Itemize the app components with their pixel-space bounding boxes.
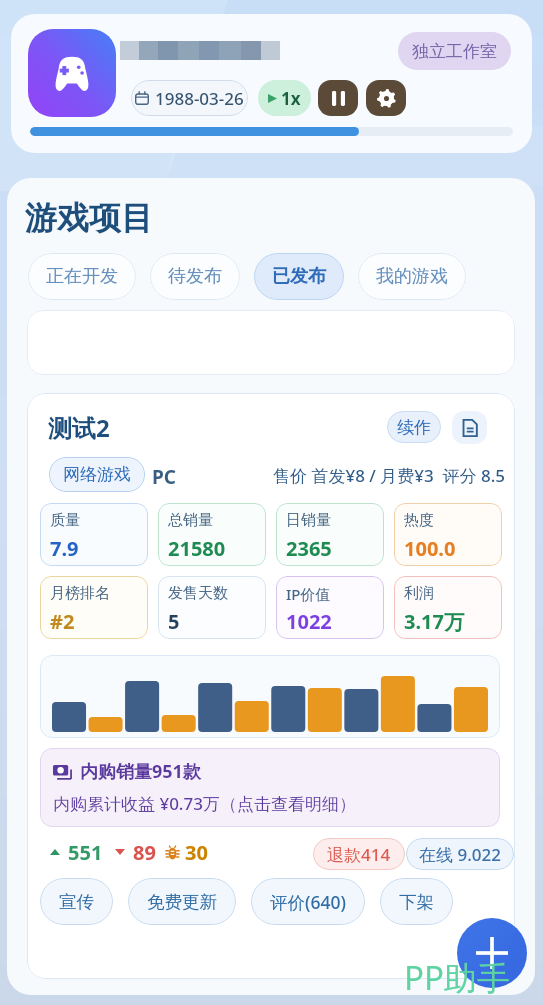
staticText: 续作 xyxy=(397,417,431,438)
staticText: 售价 首发¥8 / 月费¥3 评分 8.5 xyxy=(273,464,506,487)
staticText: 1022 xyxy=(286,608,332,635)
staticText: 100.0 xyxy=(404,535,456,562)
staticText: 21580 xyxy=(168,535,226,562)
staticText: 免费更新 xyxy=(147,891,217,913)
staticText: 内购销量951款 xyxy=(80,759,201,784)
button[interactable]: Add game xyxy=(457,918,527,988)
button[interactable]: 在线 9.022 xyxy=(406,838,514,870)
button[interactable]: 免费更新 xyxy=(128,878,236,925)
staticText: 宣传 xyxy=(59,891,94,913)
button[interactable]: 宣传 xyxy=(40,878,113,925)
staticText: 内购累计收益 ¥0.73万（点击查看明细） xyxy=(53,792,356,815)
button[interactable]: 独立工作室 xyxy=(398,32,511,70)
staticText: 30 xyxy=(185,839,208,866)
staticText: 日销量 xyxy=(286,511,331,530)
staticText: 2365 xyxy=(286,535,332,562)
button[interactable]: 正在开发 xyxy=(28,253,136,300)
staticText: 551 xyxy=(68,839,103,866)
button[interactable]: 待发布 xyxy=(150,253,240,300)
staticText: 1x xyxy=(281,87,301,110)
button[interactable]: 我的游戏 xyxy=(358,253,466,300)
staticText: IP价值 xyxy=(286,584,331,604)
button[interactable]: Settings xyxy=(366,80,406,116)
button[interactable]: 1988-03-26 xyxy=(131,80,248,116)
staticText: 我的游戏 xyxy=(376,265,448,288)
staticText: 网络游戏 xyxy=(63,464,131,485)
staticText: PC xyxy=(152,464,176,490)
staticText: 待发布 xyxy=(168,265,222,288)
staticText: PP助手 xyxy=(404,955,510,1000)
staticText: 7.9 xyxy=(50,535,79,562)
staticText: 发售天数 xyxy=(168,584,228,603)
button[interactable]: 评价(640) xyxy=(251,878,365,925)
staticText: 利润 xyxy=(404,584,434,603)
button[interactable]: 下架 xyxy=(380,878,453,925)
button[interactable]: 续作 xyxy=(387,411,441,443)
button[interactable]: 内购销量951款 xyxy=(40,748,500,827)
staticText: 月榜排名 xyxy=(50,584,110,603)
staticText: 热度 xyxy=(404,511,434,530)
staticText: 质量 xyxy=(50,511,80,530)
button[interactable]: 退款414 xyxy=(313,838,405,870)
staticText: 退款414 xyxy=(327,843,391,866)
button[interactable]: 网络游戏 xyxy=(49,457,145,492)
staticText: 测试2 xyxy=(48,411,110,444)
button[interactable]: Game icon xyxy=(28,29,116,117)
staticText: #2 xyxy=(50,608,75,635)
staticText: 5 xyxy=(168,608,180,635)
staticText: 正在开发 xyxy=(46,265,118,288)
staticText: 游戏项目 xyxy=(25,198,153,238)
button[interactable]: Details xyxy=(452,411,487,444)
staticText: 总销量 xyxy=(168,511,213,530)
staticText: 1988-03-26 xyxy=(155,87,244,110)
staticText: 独立工作室 xyxy=(412,41,497,62)
button[interactable]: 1x xyxy=(258,80,311,116)
staticText: 已发布 xyxy=(272,265,326,288)
staticText: 在线 9.022 xyxy=(419,843,501,866)
staticText: 下架 xyxy=(399,891,434,913)
button[interactable]: Pause xyxy=(318,80,358,116)
staticText: 3.17万 xyxy=(404,608,464,635)
staticText: 89 xyxy=(133,839,156,866)
staticText: 评价(640) xyxy=(270,890,346,914)
button[interactable]: 已发布 xyxy=(254,253,344,300)
